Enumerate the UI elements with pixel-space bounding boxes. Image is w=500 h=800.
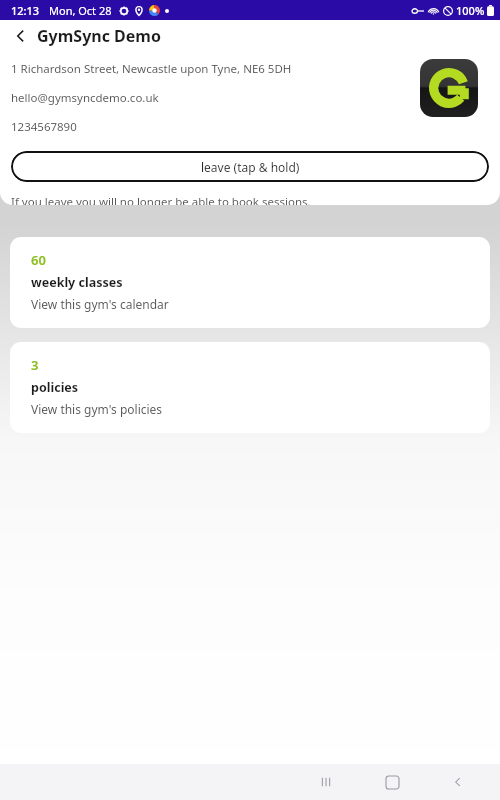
staticText: policies xyxy=(31,379,79,396)
staticText: If you leave you will no longer be able … xyxy=(11,194,311,205)
staticText: weekly classes xyxy=(31,274,123,291)
staticText: leave (tap & hold) xyxy=(201,159,300,175)
staticText: 1234567890 xyxy=(11,119,77,135)
button[interactable]: 60 xyxy=(10,237,490,328)
staticText: 1 Richardson Street, Newcastle upon Tyne… xyxy=(11,61,292,77)
staticText: GymSync Demo xyxy=(37,25,161,47)
staticText: 100% xyxy=(456,3,485,18)
button[interactable]: Home xyxy=(370,764,414,800)
staticText: 12:13 xyxy=(11,3,40,18)
staticText: View this gym's calendar xyxy=(31,296,169,312)
button[interactable]: leave (tap & hold) xyxy=(11,151,489,182)
button[interactable]: 3 xyxy=(10,342,490,433)
button[interactable]: Back xyxy=(436,764,480,800)
staticText: hello@gymsyncdemo.co.uk xyxy=(11,90,159,106)
staticText: 3 xyxy=(31,356,39,374)
button[interactable]: Back xyxy=(9,24,33,48)
staticText: View this gym's policies xyxy=(31,401,163,417)
staticText: 60 xyxy=(31,251,46,269)
button[interactable]: Recent apps xyxy=(304,764,348,800)
staticText: Mon, Oct 28 xyxy=(49,3,112,18)
